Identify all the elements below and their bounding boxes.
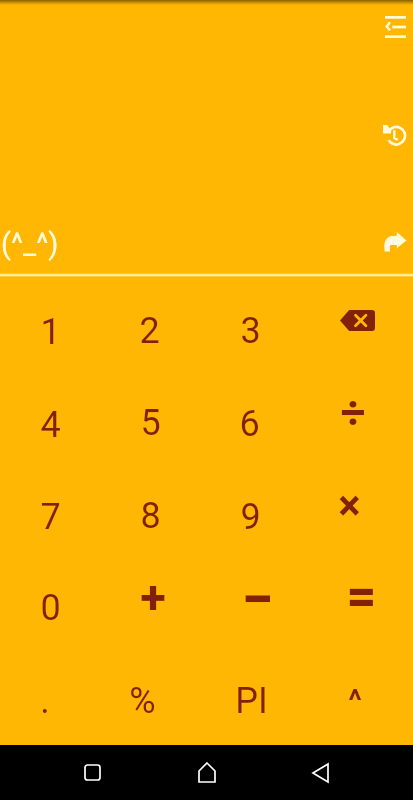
button[interactable]: 9 — [201, 467, 302, 560]
staticText: × — [338, 481, 361, 530]
button[interactable]: − — [201, 560, 302, 653]
staticText: 9 — [240, 496, 261, 538]
staticText: 6 — [239, 403, 260, 445]
staticText: (^_^) — [1, 227, 59, 261]
button[interactable]: ÷ — [302, 375, 403, 467]
button[interactable]: × — [302, 467, 403, 560]
button[interactable]: 8 — [100, 467, 201, 560]
staticText: + — [140, 569, 166, 624]
button[interactable]: Share — [374, 222, 413, 261]
staticText: 0 — [40, 587, 61, 629]
button[interactable]: 1 — [0, 283, 100, 375]
staticText: 2 — [139, 310, 160, 352]
staticText: 8 — [140, 495, 161, 537]
button[interactable]: 6 — [201, 375, 302, 467]
button[interactable]: . — [0, 653, 100, 746]
staticText: ÷ — [340, 387, 366, 439]
button[interactable]: Back — [296, 745, 344, 800]
button[interactable]: 4 — [0, 375, 100, 467]
button[interactable]: 2 — [100, 283, 201, 375]
staticText: % — [129, 680, 156, 722]
staticText: 5 — [140, 402, 161, 444]
staticText: . — [40, 680, 50, 722]
staticText: 4 — [40, 404, 61, 446]
button[interactable]: Home — [183, 745, 231, 800]
button[interactable]: 5 — [100, 375, 201, 467]
staticText: ^ — [348, 682, 362, 718]
button[interactable]: History — [373, 115, 413, 157]
button[interactable]: ^ — [302, 653, 403, 746]
button[interactable]: + — [100, 560, 201, 653]
staticText: 3 — [240, 310, 261, 352]
staticText: = — [346, 565, 377, 627]
staticText: 7 — [40, 496, 61, 538]
staticText: PI — [235, 680, 268, 722]
button[interactable]: 3 — [201, 283, 302, 375]
staticText: 1 — [40, 311, 61, 353]
button[interactable]: = — [302, 560, 403, 653]
button[interactable]: PI — [201, 653, 302, 746]
button[interactable]: % — [100, 653, 201, 746]
button[interactable]: Switch layout — [375, 6, 413, 48]
button[interactable]: 7 — [0, 467, 100, 560]
button[interactable]: Recents — [68, 745, 116, 800]
button[interactable]: 0 — [0, 560, 100, 653]
button[interactable] — [302, 283, 403, 375]
staticText: − — [241, 565, 274, 633]
